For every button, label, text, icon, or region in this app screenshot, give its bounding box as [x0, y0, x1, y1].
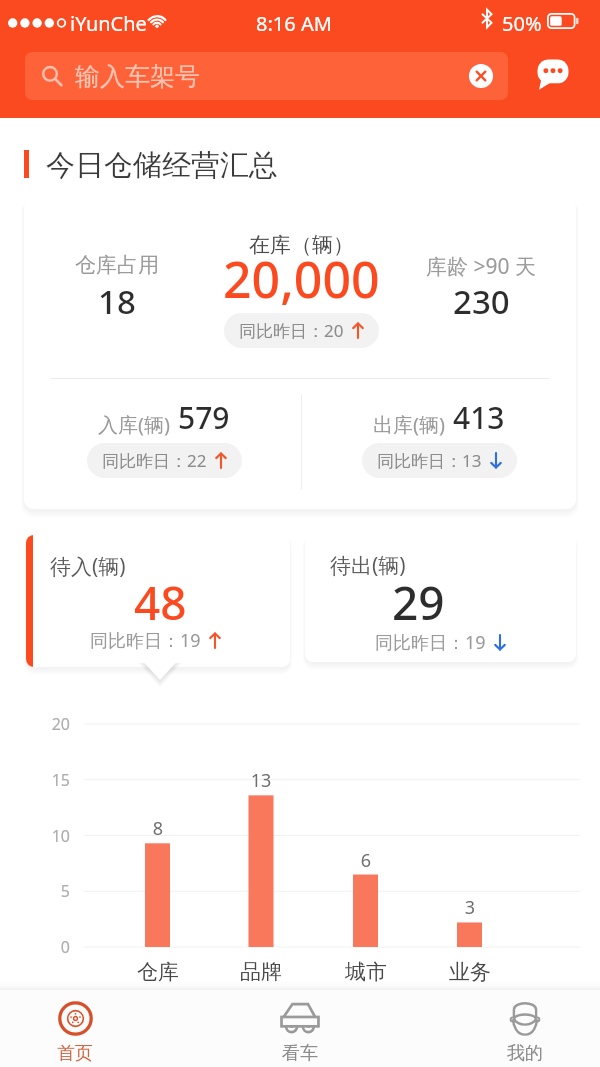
staticText: 18 [98, 279, 136, 324]
staticText: iYunChe [70, 10, 147, 37]
button[interactable]: 首页 [25, 992, 125, 1067]
button[interactable]: 仓库占用 [24, 199, 576, 509]
staticText: 8 [128, 816, 188, 841]
staticText: 今日仓储经营汇总 [46, 147, 278, 184]
staticText: 仓库 [118, 959, 198, 985]
staticText: 6 [336, 848, 396, 873]
staticText: 业务 [430, 959, 510, 985]
staticText: 29 [392, 571, 445, 634]
staticText: 13 [231, 768, 291, 793]
button[interactable]: 待出(辆) [305, 535, 576, 662]
staticText: 10 [20, 825, 70, 847]
button[interactable]: 我的 [475, 992, 575, 1067]
staticText: 品牌 [221, 959, 301, 985]
staticText: 3 [440, 895, 500, 920]
staticText: 50% [502, 10, 542, 37]
staticText: 入库(辆) [98, 411, 170, 438]
staticText: 同比昨日：13 [377, 449, 482, 472]
staticText: 579 [178, 397, 230, 438]
staticText: 库龄 >90 天 [426, 252, 536, 281]
staticText: 20,000 [223, 245, 380, 313]
staticText: 在库（辆） [249, 232, 354, 258]
staticText: 5 [20, 880, 70, 902]
staticText: 我的 [507, 1042, 543, 1065]
staticText: 出库(辆) [373, 411, 445, 438]
staticText: 15 [20, 769, 70, 791]
button[interactable]: 待入(辆) [26, 535, 290, 667]
staticText: 同比昨日：19 [90, 628, 201, 653]
button[interactable]: 看车 [250, 992, 350, 1067]
staticText: 看车 [282, 1042, 318, 1065]
staticText: 230 [453, 279, 510, 324]
other: Clear [466, 61, 496, 91]
staticText: 待入(辆) [50, 552, 126, 581]
button[interactable]: Messages [527, 48, 579, 100]
staticText: 0 [20, 936, 70, 958]
staticText: 待出(辆) [330, 551, 406, 580]
staticText: 20 [20, 713, 70, 735]
button[interactable]: 输入车架号 [25, 52, 508, 100]
staticText: 同比昨日：19 [375, 630, 486, 655]
staticText: 413 [453, 397, 505, 438]
staticText: 输入车架号 [75, 61, 200, 92]
staticText: 首页 [57, 1042, 93, 1065]
staticText: 48 [134, 571, 187, 634]
staticText: 同比昨日：20 [239, 319, 344, 342]
staticText: 同比昨日：22 [102, 449, 207, 472]
staticText: 8:16 AM [256, 10, 332, 37]
staticText: 仓库占用 [75, 252, 159, 278]
staticText: 城市 [326, 959, 406, 985]
